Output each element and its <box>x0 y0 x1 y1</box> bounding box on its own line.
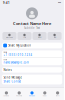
staticText: Keypad <box>29 95 35 97</box>
staticText: Send Message <box>3 76 22 79</box>
button[interactable]: Recents <box>13 88 26 100</box>
staticText: message <box>6 36 13 38</box>
staticText: +1 (555) 010-1234 <box>3 53 32 57</box>
staticText: 9:41 <box>3 1 10 5</box>
staticText: Share My Location <box>8 44 31 47</box>
button[interactable]: Keypad <box>26 88 38 100</box>
button[interactable]: call <box>17 32 32 40</box>
button[interactable]: message <box>2 32 16 40</box>
button[interactable]: home <box>2 58 62 65</box>
staticText: name@example.com <box>3 61 28 64</box>
button[interactable]: Share My Location <box>2 43 62 48</box>
staticText: video <box>37 36 41 38</box>
button[interactable]: More <box>51 88 64 100</box>
staticText: Notes <box>3 68 11 72</box>
button[interactable]: mobile <box>2 50 62 58</box>
staticText: Recents <box>16 95 22 97</box>
staticText: Apps <box>43 95 47 97</box>
button[interactable]: video <box>32 32 47 40</box>
staticText: Share Contact <box>3 80 21 83</box>
staticText: Contact Name Here <box>13 21 51 26</box>
staticText: More <box>56 95 60 97</box>
button[interactable]: Contacts <box>0 88 13 100</box>
staticText: mail <box>54 36 56 38</box>
staticText: Contacts <box>3 95 9 97</box>
staticText: home <box>3 59 7 61</box>
staticText: Subtitle Text <box>24 26 40 30</box>
button[interactable]: Apps <box>38 88 51 100</box>
staticText: ••• <box>58 1 61 5</box>
button[interactable]: mail <box>48 32 62 40</box>
staticText: call <box>23 36 25 38</box>
button[interactable]: Notes <box>2 67 62 73</box>
staticText: mobile <box>3 51 7 53</box>
